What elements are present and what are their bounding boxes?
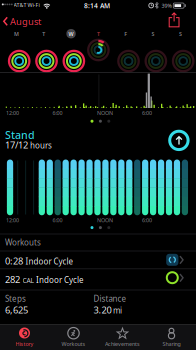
staticText: T bbox=[42, 30, 45, 38]
button[interactable]: Thursday bbox=[85, 29, 111, 71]
button[interactable]: Back bbox=[3, 15, 41, 28]
staticText: 12:00 bbox=[6, 217, 19, 224]
button[interactable]: Saturday bbox=[140, 29, 166, 71]
staticText: 6:00 bbox=[142, 109, 152, 116]
button[interactable]: Tuesday bbox=[31, 29, 57, 71]
staticText: S bbox=[179, 30, 182, 38]
button[interactable]: History bbox=[0, 325, 49, 350]
staticText: 17/12 bbox=[5, 139, 28, 151]
staticText: Indoor Cycle bbox=[36, 275, 84, 285]
staticText: T bbox=[97, 30, 100, 38]
staticText: 6:00 bbox=[142, 217, 152, 224]
button[interactable]: Share bbox=[168, 12, 180, 28]
staticText: NOON bbox=[97, 109, 113, 116]
staticText: 39% bbox=[161, 2, 171, 9]
staticText: History bbox=[15, 340, 33, 348]
staticText: S bbox=[151, 30, 154, 38]
button[interactable]: Sunday bbox=[167, 29, 193, 71]
button[interactable]: Sharing bbox=[147, 325, 196, 350]
button[interactable]: Wednesday bbox=[58, 29, 84, 71]
staticText: F bbox=[124, 30, 127, 38]
staticText: NOON bbox=[97, 217, 113, 224]
staticText: Stand bbox=[5, 128, 35, 142]
staticText: 282 bbox=[5, 273, 20, 286]
button[interactable]: Monday bbox=[3, 29, 29, 71]
staticText: Achievements bbox=[105, 340, 140, 348]
button[interactable]: Scroll to top bbox=[170, 131, 188, 150]
staticText: Steps bbox=[5, 293, 26, 304]
staticText: hours bbox=[30, 140, 52, 151]
button[interactable]: 0:28 bbox=[0, 251, 196, 268]
staticText: 6:00 bbox=[52, 109, 62, 116]
staticText: 6:00 bbox=[52, 217, 62, 224]
button[interactable]: Friday bbox=[113, 29, 139, 71]
staticText: W bbox=[69, 30, 74, 38]
staticText: CAL bbox=[22, 276, 33, 285]
staticText: 3.20 bbox=[93, 304, 111, 316]
staticText: 6,625 bbox=[5, 304, 28, 316]
staticText: mi bbox=[113, 305, 122, 316]
button[interactable]: 282 bbox=[0, 269, 196, 289]
button[interactable]: Achievements bbox=[98, 325, 147, 350]
button[interactable]: Workouts bbox=[49, 325, 98, 350]
staticText: August bbox=[10, 15, 41, 27]
staticText: M bbox=[14, 30, 19, 38]
staticText: Distance bbox=[93, 293, 126, 304]
staticText: Indoor Cycle bbox=[25, 256, 73, 267]
staticText: 0:28 bbox=[5, 255, 23, 267]
staticText: AT&T Wi-Fi bbox=[13, 1, 39, 9]
staticText: Workouts bbox=[61, 340, 85, 348]
staticText: Sharing bbox=[162, 340, 180, 348]
staticText: 12:00 bbox=[6, 109, 19, 116]
staticText: 8:14 AM bbox=[84, 1, 110, 10]
staticText: Workouts bbox=[5, 237, 41, 248]
